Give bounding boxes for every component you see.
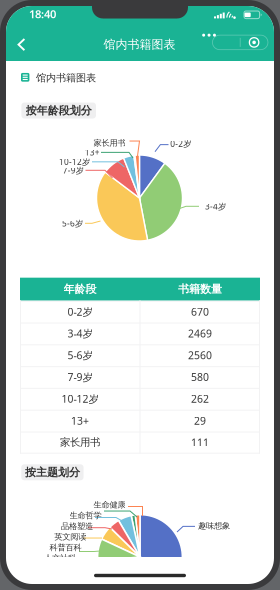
staticText: 生命哲学 <box>70 510 102 521</box>
staticText: 年龄段 <box>63 282 96 296</box>
staticText: 生命健康 <box>93 500 125 510</box>
staticText: 580 <box>191 370 209 384</box>
staticText: 670 <box>191 304 209 319</box>
staticText: 趣味想象 <box>198 521 230 531</box>
staticText: 5-6岁 <box>67 348 92 362</box>
staticText: 3-4岁 <box>67 326 92 340</box>
staticText: 家长用书 <box>93 138 125 148</box>
staticText: 0-2岁 <box>170 138 191 149</box>
staticText: 18:40 <box>29 6 56 22</box>
staticText: 5-6岁 <box>62 218 83 229</box>
staticText: 7-9岁 <box>67 370 92 384</box>
staticText: 7-9岁 <box>63 165 84 176</box>
staticText: 英文阅读 <box>54 532 86 542</box>
staticText: 2560 <box>188 348 212 362</box>
staticText: 0-2岁 <box>67 304 92 319</box>
staticText: 品格塑造 <box>61 521 93 531</box>
staticText: 10-12岁 <box>61 392 98 406</box>
staticText: 按年龄段划分 <box>26 104 92 117</box>
button[interactable]: Back <box>6 6 274 584</box>
staticText: 家长用书 <box>60 436 100 449</box>
staticText: 29 <box>194 413 206 428</box>
staticText: 书籍数量 <box>178 282 222 296</box>
staticText: 人文社科 <box>44 553 76 563</box>
staticText: 13+ <box>85 147 100 158</box>
staticText: 按主题划分 <box>25 465 80 479</box>
staticText: 3-4岁 <box>205 201 226 212</box>
button[interactable]: More <box>226 35 254 50</box>
staticText: 科普百科 <box>49 542 81 553</box>
button[interactable]: Close <box>226 35 254 50</box>
staticText: 262 <box>191 392 209 406</box>
staticText: 馆内书籍图表 <box>103 37 175 52</box>
staticText: 10-12岁 <box>59 156 90 167</box>
staticText: 馆内书籍图表 <box>36 71 96 84</box>
staticText: 2469 <box>188 326 212 340</box>
staticText: 13+ <box>71 413 89 428</box>
staticText: 111 <box>191 435 209 449</box>
